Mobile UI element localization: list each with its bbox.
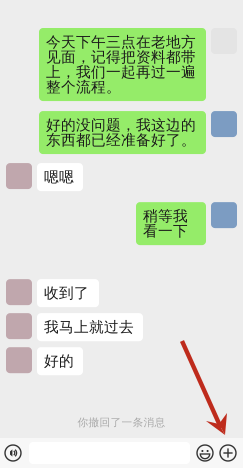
button[interactable]: Emoji — [190, 438, 216, 468]
staticText: 我马上就过去 — [44, 318, 134, 336]
staticText: 嗯嗯 — [44, 168, 74, 186]
button[interactable]: Voice message — [0, 438, 29, 468]
staticText: 稍等我看一下 — [143, 207, 188, 240]
staticText: 你撤回了一条消息 — [77, 416, 165, 429]
staticText: 好的 — [44, 352, 74, 370]
button[interactable]: More — [216, 438, 243, 468]
staticText: 好的没问题，我这边的东西都已经准备好了。 — [46, 116, 196, 149]
staticText: 收到了 — [44, 284, 89, 302]
staticText: 今天下午三点在老地方见面，记得把资料都带上，我们一起再过一遍整个流程。 — [46, 33, 196, 96]
